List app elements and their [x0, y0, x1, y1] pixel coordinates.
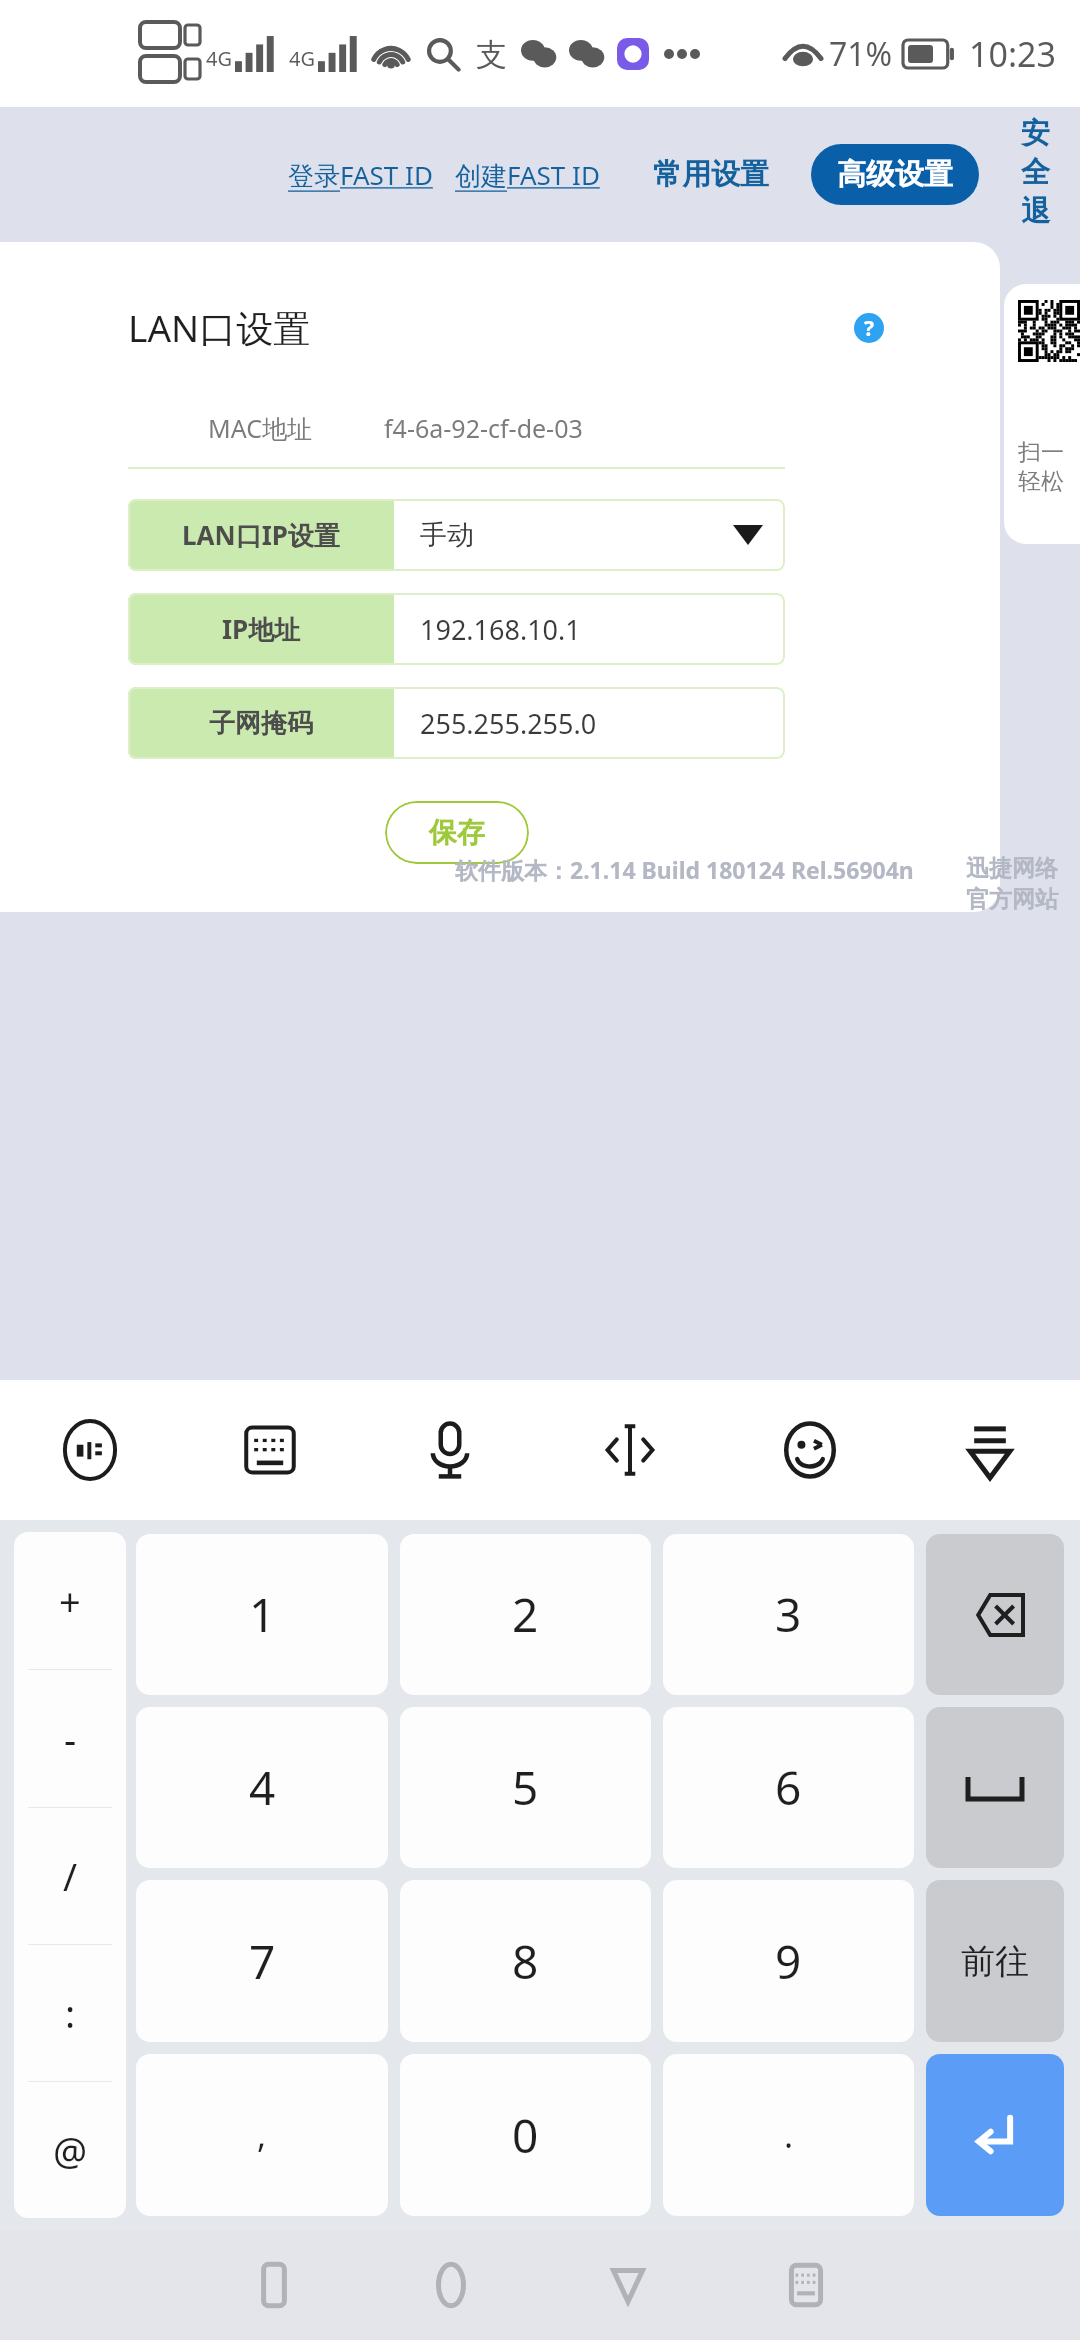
staticText: : [65, 1987, 76, 2039]
staticText: 支 [476, 35, 507, 74]
button[interactable]: 6 [663, 1707, 914, 1868]
staticText: 5 [512, 1756, 539, 1819]
staticText: @ [53, 2124, 88, 2176]
staticText: 子网掩码 [209, 707, 313, 740]
button[interactable]: 键盘 [722, 2230, 890, 2340]
staticText: - [64, 1713, 77, 1765]
button[interactable]: 7 [136, 1880, 388, 2042]
staticText: 8 [512, 1930, 539, 1993]
button[interactable]: 0 [400, 2054, 651, 2216]
staticText: f4-6a-92-cf-de-03 [384, 411, 583, 445]
staticText: 轻松 [1018, 467, 1064, 496]
staticText: 0 [512, 2104, 539, 2167]
button[interactable]: 回车 [926, 2054, 1064, 2216]
button[interactable]: + [14, 1532, 126, 1669]
button[interactable]: 删除 [926, 1534, 1064, 1695]
button[interactable]: , [136, 2054, 388, 2216]
staticText: 1 [249, 1583, 276, 1646]
staticText: ? [864, 314, 875, 343]
staticText: 9 [775, 1930, 802, 1993]
button[interactable]: 4 [136, 1707, 388, 1868]
staticText: 71% [829, 32, 893, 76]
staticText: 3 [775, 1583, 802, 1646]
staticText: / [63, 1850, 78, 1902]
button[interactable]: 登录FAST ID [285, 154, 436, 196]
button[interactable]: 帮助 [854, 313, 884, 343]
staticText: . [784, 2112, 794, 2158]
button[interactable]: LAN口IP设置 [128, 499, 785, 571]
button[interactable]: . [663, 2054, 914, 2216]
button[interactable]: 表情 [720, 1380, 900, 1520]
button[interactable]: 高级设置 [811, 144, 979, 205]
button[interactable]: : [14, 1945, 126, 2081]
button[interactable]: 2 [400, 1534, 651, 1695]
button[interactable]: 输入法 [0, 1380, 180, 1520]
staticText: MAC地址 [208, 411, 312, 445]
button[interactable]: 5 [400, 1707, 651, 1868]
staticText: 迅捷网络官方网站 [966, 854, 1080, 914]
button[interactable]: 空格 [926, 1707, 1064, 1868]
button[interactable]: 1 [136, 1534, 388, 1695]
staticText: 7 [249, 1930, 276, 1993]
button[interactable]: @ [14, 2082, 126, 2218]
staticText: 安全退出 [1021, 115, 1072, 234]
staticText: 6 [775, 1756, 802, 1819]
button[interactable]: IP地址 [128, 593, 785, 665]
button[interactable]: 语音输入 [360, 1380, 540, 1520]
staticText: LAN口设置 [128, 302, 311, 353]
button[interactable]: 收起键盘 [900, 1380, 1080, 1520]
button[interactable]: 创建FAST ID [452, 154, 603, 196]
staticText: IP地址 [222, 611, 301, 647]
staticText: , [257, 2112, 267, 2158]
staticText: 4G [289, 45, 315, 72]
button[interactable]: 3 [663, 1534, 914, 1695]
button[interactable]: 9 [663, 1880, 914, 2042]
staticText: 192.168.10.1 [420, 611, 581, 648]
button[interactable]: 安全退出 [1013, 107, 1080, 242]
button[interactable]: 扫一扫 [1004, 284, 1080, 544]
staticText: 2 [512, 1583, 539, 1646]
button[interactable]: 主页 [367, 2230, 534, 2340]
staticText: 扫一 [1018, 438, 1064, 467]
staticText: 手动 [420, 518, 474, 552]
button[interactable]: 最近任务 [190, 2230, 357, 2340]
button[interactable]: - [14, 1670, 126, 1807]
button[interactable]: 键盘 [180, 1380, 360, 1520]
staticText: 10:23 [969, 31, 1056, 77]
button[interactable]: / [14, 1808, 126, 1944]
staticText: 4G [206, 45, 232, 72]
button[interactable]: 返回 [544, 2230, 712, 2340]
button[interactable]: 子网掩码 [128, 687, 785, 759]
staticText: 登录FAST ID [288, 157, 433, 193]
staticText: 255.255.255.0 [420, 705, 597, 742]
button[interactable]: 光标移动 [540, 1380, 720, 1520]
staticText: + [59, 1575, 81, 1627]
staticText: 前往 [961, 1940, 1029, 1983]
button[interactable]: 8 [400, 1880, 651, 2042]
button[interactable]: 前往 [926, 1880, 1064, 2042]
staticText: 4 [249, 1756, 276, 1819]
staticText: 创建FAST ID [455, 157, 600, 193]
staticText: 保存 [429, 815, 485, 850]
staticText: LAN口IP设置 [182, 517, 340, 553]
button[interactable]: 常用设置 [645, 148, 777, 201]
staticText: 高级设置 [837, 156, 953, 193]
button[interactable]: 保存 [385, 801, 529, 864]
staticText: 软件版本：2.1.14 Build 180124 Rel.56904n [455, 854, 914, 885]
staticText: 常用设置 [653, 156, 769, 193]
